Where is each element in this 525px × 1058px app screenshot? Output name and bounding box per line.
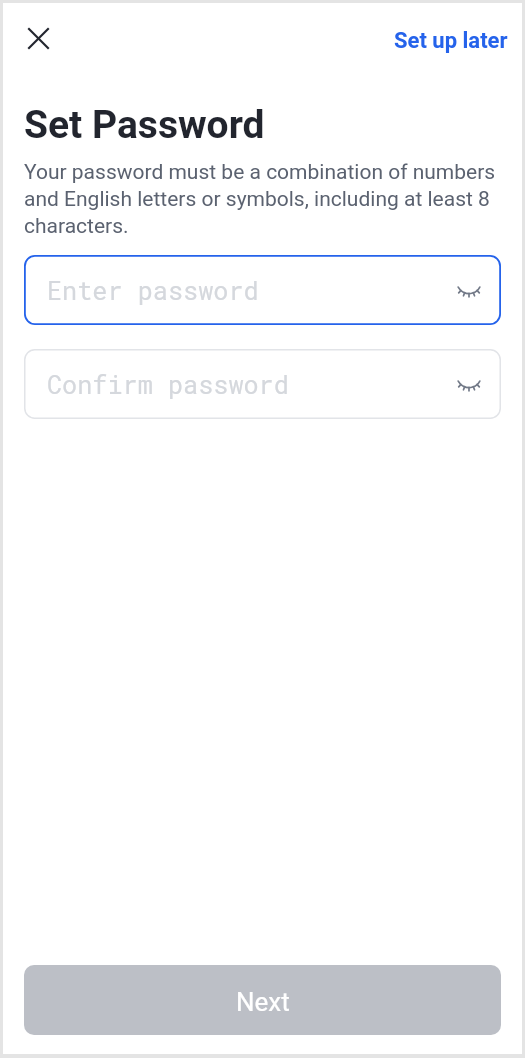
staticText: Your password must be a combination of n… (24, 160, 501, 239)
button[interactable]: Show password (447, 362, 491, 406)
staticText: Next (236, 987, 290, 1017)
staticText: Confirm password (47, 368, 289, 401)
button[interactable]: Set up later (384, 20, 518, 62)
button[interactable]: Next (24, 965, 501, 1035)
button[interactable]: Confirm password (24, 349, 501, 419)
staticText: Set Password (24, 102, 265, 148)
staticText: Set up later (394, 28, 508, 54)
button[interactable]: Show password (447, 268, 491, 312)
button[interactable]: Enter password (24, 255, 501, 325)
staticText: Enter password (47, 274, 259, 307)
button[interactable]: Close (16, 16, 60, 60)
